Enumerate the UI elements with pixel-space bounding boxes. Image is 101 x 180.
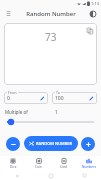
staticText: 1:13 (91, 1, 99, 6)
staticText: 1 (55, 109, 58, 115)
button[interactable]: Coin (26, 156, 51, 170)
staticText: 73 (45, 30, 57, 44)
button[interactable]: Decrease (6, 137, 20, 151)
button[interactable]: Copy (85, 26, 94, 35)
button[interactable]: Recents (80, 171, 89, 180)
button[interactable] (5, 118, 96, 126)
staticText: Card (60, 165, 68, 169)
staticText: Random Number (26, 10, 76, 18)
staticText: From (8, 90, 17, 95)
button[interactable]: Menu (4, 9, 13, 18)
button[interactable]: 73 (4, 23, 97, 85)
staticText: To (56, 90, 60, 95)
button[interactable]: 0 (4, 92, 48, 104)
staticText: Numbers (82, 165, 96, 169)
button[interactable]: Dice (0, 156, 26, 170)
button[interactable]: Card (51, 156, 76, 170)
staticText: Dice (10, 165, 17, 169)
staticText: Coin (35, 165, 42, 169)
button[interactable]: RANDOM NUMBER (24, 136, 78, 151)
staticText: Multiple of (5, 109, 28, 115)
button[interactable]: Home (46, 171, 55, 180)
button[interactable]: Increase (81, 137, 95, 151)
staticText: 100 (55, 95, 64, 102)
button[interactable]: Numbers (76, 156, 101, 170)
button[interactable]: 100 (52, 92, 97, 104)
staticText: RANDOM NUMBER (36, 141, 73, 146)
staticText: 0 (7, 95, 10, 102)
button[interactable]: Back (12, 171, 21, 180)
button[interactable]: Toggle theme (88, 9, 97, 18)
